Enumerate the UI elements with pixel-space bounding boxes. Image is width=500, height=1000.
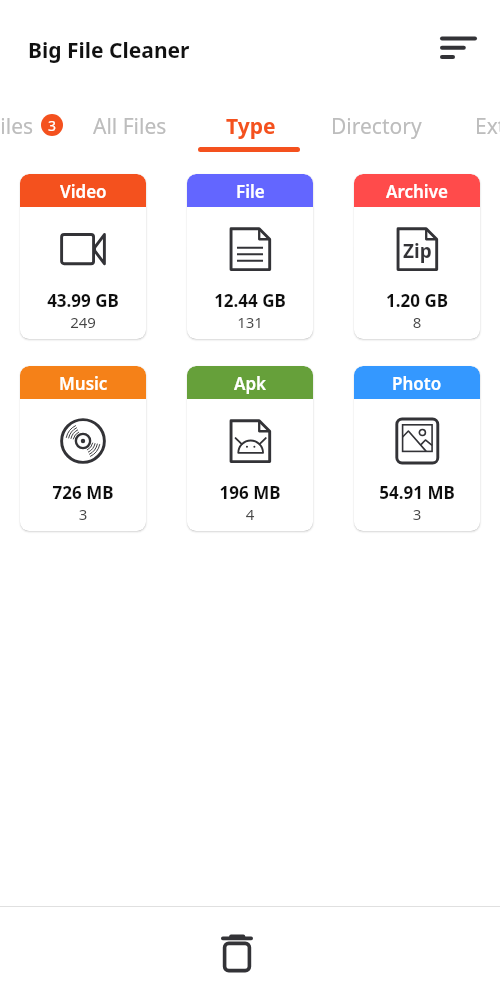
staticText: 196 MB (187, 481, 313, 504)
button[interactable]: Apk (187, 366, 313, 531)
staticText: 3 (354, 504, 480, 524)
button[interactable]: Video (20, 174, 146, 339)
button[interactable]: Photo (354, 366, 480, 531)
button[interactable]: Delete (209, 926, 265, 982)
button[interactable]: Archive (354, 174, 480, 339)
staticText: 3 (20, 504, 146, 524)
staticText: Zip (403, 238, 432, 264)
staticText: Big Files (0, 112, 34, 141)
staticText: 4 (187, 504, 313, 524)
staticText: Video (60, 180, 107, 203)
staticText: 8 (354, 312, 480, 332)
button[interactable]: All Files (93, 112, 167, 141)
button[interactable]: Type (226, 112, 276, 141)
button[interactable]: Directory (331, 112, 422, 141)
staticText: 1.20 GB (354, 289, 480, 312)
staticText: 131 (187, 312, 313, 332)
button[interactable]: Big Files (0, 100, 34, 140)
staticText: 43.99 GB (20, 289, 146, 312)
staticText: Big File Cleaner (28, 36, 190, 65)
staticText: Apk (234, 372, 267, 395)
staticText: Archive (386, 180, 448, 203)
staticText: 3 (48, 116, 57, 135)
staticText: 54.91 MB (354, 481, 480, 504)
staticText: 249 (20, 312, 146, 332)
button[interactable]: Extension (475, 112, 500, 141)
button[interactable]: File (187, 174, 313, 339)
staticText: 12.44 GB (187, 289, 313, 312)
staticText: 726 MB (20, 481, 146, 504)
staticText: Photo (392, 372, 442, 395)
button[interactable]: Sort (428, 26, 476, 74)
staticText: File (236, 180, 265, 203)
button[interactable]: Music (20, 366, 146, 531)
staticText: Music (59, 372, 108, 395)
